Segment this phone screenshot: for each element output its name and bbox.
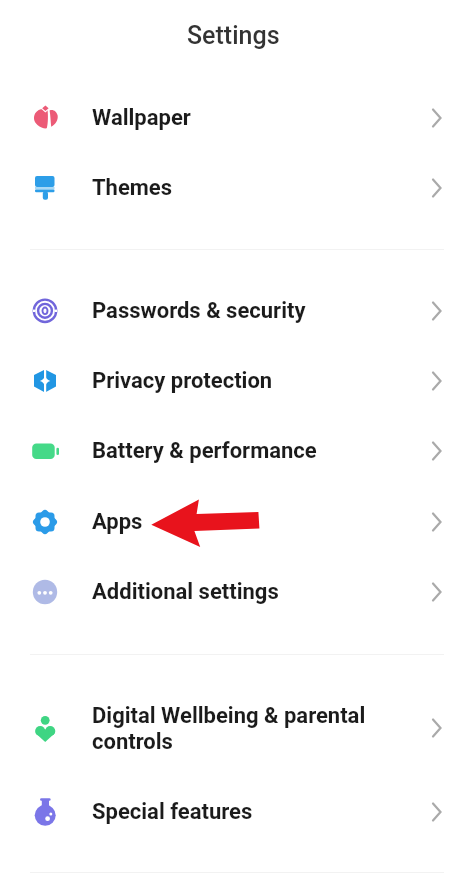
button[interactable]: Special features xyxy=(0,777,474,847)
staticText: Settings xyxy=(187,21,280,50)
staticText: Passwords & security xyxy=(92,298,306,324)
button[interactable]: Apps xyxy=(0,487,474,557)
staticText: Apps xyxy=(92,509,143,535)
button[interactable]: Digital Wellbeing & parental controls xyxy=(0,680,474,776)
button[interactable]: Privacy protection xyxy=(0,346,474,416)
button[interactable]: Battery & performance xyxy=(0,416,474,486)
staticText: Themes xyxy=(92,175,173,201)
staticText: Battery & performance xyxy=(92,438,317,464)
staticText: Special features xyxy=(92,799,253,825)
button[interactable]: Themes xyxy=(0,153,474,223)
button[interactable]: Additional settings xyxy=(0,557,474,627)
staticText: Wallpaper xyxy=(92,105,191,131)
button[interactable]: Wallpaper xyxy=(0,83,474,153)
button[interactable]: Passwords & security xyxy=(0,276,474,346)
staticText: Privacy protection xyxy=(92,368,273,394)
staticText: Digital Wellbeing & parental controls xyxy=(92,703,366,754)
staticText: Additional settings xyxy=(92,579,279,605)
